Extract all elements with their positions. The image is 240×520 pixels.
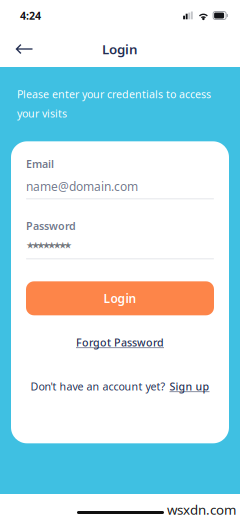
staticText: name@domain.com bbox=[26, 178, 138, 194]
staticText: Please enter your credentials to access bbox=[17, 87, 211, 101]
staticText: Sign up bbox=[169, 379, 209, 393]
staticText: Password bbox=[26, 219, 76, 233]
staticText: Login bbox=[103, 290, 136, 306]
staticText: 4:24 bbox=[20, 8, 41, 23]
staticText: Email bbox=[26, 157, 54, 171]
button[interactable]: Login bbox=[26, 281, 214, 315]
staticText: wsxdn.com bbox=[167, 501, 236, 518]
staticText: ★★★★★★★★ bbox=[26, 240, 72, 251]
staticText: Don't have an account yet? bbox=[30, 379, 165, 393]
button[interactable]: Back bbox=[7, 34, 41, 64]
staticText: your visits bbox=[17, 106, 67, 120]
button[interactable]: Forgot Password bbox=[76, 336, 164, 348]
button[interactable]: Sign up bbox=[169, 379, 209, 393]
staticText: Forgot Password bbox=[76, 335, 164, 349]
staticText: Login bbox=[102, 40, 138, 58]
